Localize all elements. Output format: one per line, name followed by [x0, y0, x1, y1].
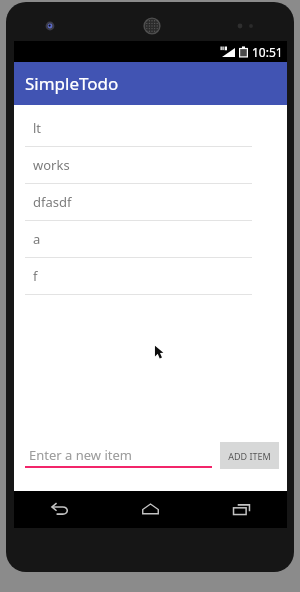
- button[interactable]: Recent apps: [196, 491, 287, 528]
- button[interactable]: ADD ITEM: [220, 442, 279, 469]
- button[interactable]: f: [14, 258, 287, 295]
- button[interactable]: lt: [14, 110, 287, 147]
- button[interactable]: Enter a new item: [25, 444, 212, 468]
- staticText: f: [33, 267, 38, 285]
- button[interactable]: works: [14, 147, 287, 184]
- staticText: Enter a new item: [29, 446, 132, 464]
- staticText: lt: [33, 119, 42, 137]
- staticText: SimpleTodo: [25, 72, 119, 95]
- button[interactable]: SimpleTodo: [14, 62, 287, 105]
- button[interactable]: Back: [14, 491, 105, 528]
- staticText: dfasdf: [33, 193, 72, 211]
- staticText: works: [33, 156, 70, 174]
- button[interactable]: Home: [105, 491, 196, 528]
- staticText: a: [33, 230, 41, 248]
- button[interactable]: a: [14, 221, 287, 258]
- staticText: ADD ITEM: [228, 450, 271, 462]
- button[interactable]: dfasdf: [14, 184, 287, 221]
- staticText: 10:51: [252, 44, 283, 60]
